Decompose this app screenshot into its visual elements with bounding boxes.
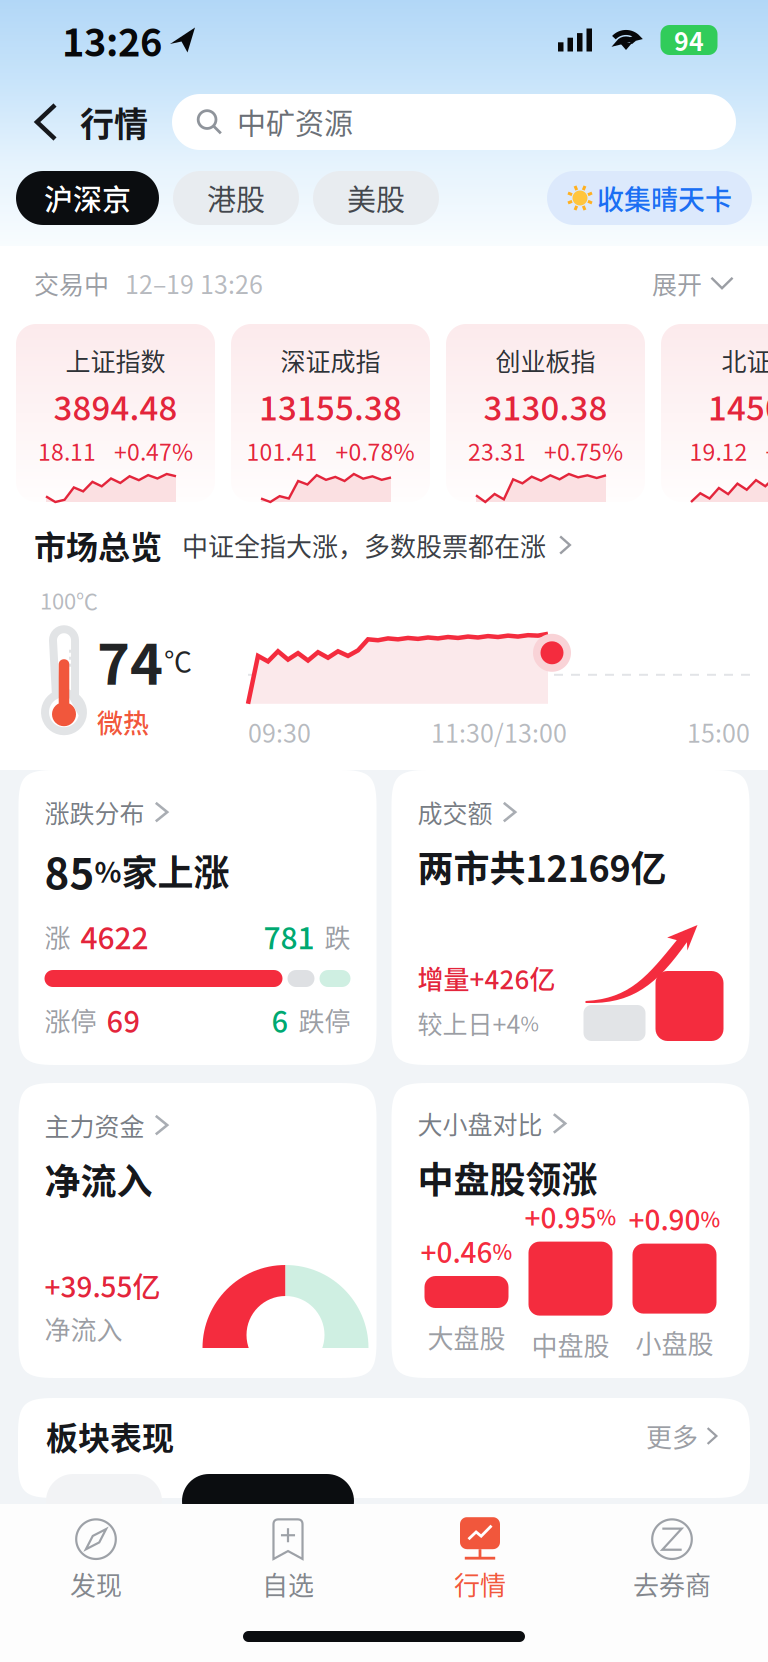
- staticText: 行情: [454, 1565, 506, 1603]
- staticText: 家上涨: [121, 844, 229, 897]
- staticText: 中矿资源: [237, 101, 353, 143]
- button[interactable]: 更多: [646, 1417, 722, 1455]
- staticText: 成交额: [417, 794, 492, 830]
- staticText: 小盘股: [635, 1324, 713, 1361]
- staticText: 中盘股领涨: [417, 1151, 597, 1204]
- staticText: 中盘股: [531, 1326, 609, 1363]
- staticText: +1.2%: [765, 434, 768, 467]
- staticText: 3894.48: [53, 382, 177, 430]
- button[interactable]: 收集晴天卡: [547, 171, 752, 225]
- staticText: 交易中: [34, 265, 109, 301]
- staticText: 市场总览: [34, 522, 162, 568]
- staticText: 13:26: [62, 12, 162, 67]
- staticText: 上证指数: [65, 342, 165, 378]
- button[interactable]: Back: [28, 99, 64, 145]
- button[interactable]: 行情: [384, 1504, 576, 1616]
- button[interactable]: 美股: [313, 171, 439, 225]
- button[interactable]: 中矿资源: [172, 94, 736, 150]
- button[interactable]: 发现: [0, 1504, 192, 1616]
- staticText: 主力资金: [44, 1107, 144, 1143]
- staticText: 自选: [262, 1565, 314, 1603]
- staticText: +0.46: [420, 1230, 492, 1271]
- staticText: 12–19 13:26: [125, 265, 263, 301]
- staticText: 板块表现: [46, 1413, 174, 1459]
- staticText: 行情: [80, 97, 148, 147]
- staticText: 跌停: [298, 1001, 350, 1039]
- staticText: 净流入: [44, 1153, 152, 1205]
- button[interactable]: 北证50: [661, 324, 768, 502]
- staticText: 94: [674, 22, 704, 58]
- staticText: 涨跌分布: [44, 794, 144, 830]
- staticText: 1450.2: [708, 382, 768, 430]
- staticText: 781: [263, 915, 314, 958]
- staticText: 11:30/13:00: [431, 714, 567, 750]
- staticText: +0.78%: [335, 434, 414, 467]
- staticText: 15:00: [687, 714, 750, 750]
- staticText: +0.75%: [544, 434, 623, 467]
- staticText: 创业板指: [495, 342, 595, 378]
- staticText: 18.11: [38, 434, 96, 467]
- staticText: 去券商: [633, 1565, 711, 1603]
- staticText: 北证50: [721, 342, 768, 378]
- staticText: %: [700, 1203, 720, 1233]
- staticText: 3130.38: [483, 382, 607, 430]
- staticText: 74: [97, 620, 163, 701]
- staticText: 101.41: [246, 434, 317, 467]
- staticText: 4622: [80, 915, 148, 958]
- staticText: 收集晴天卡: [597, 178, 732, 218]
- staticText: 大盘股: [427, 1318, 505, 1356]
- button[interactable]: 沪深京: [16, 171, 159, 225]
- staticText: 09:30: [248, 714, 311, 750]
- button[interactable]: 涨跌分布: [18, 770, 376, 1065]
- staticText: %: [520, 1008, 538, 1037]
- button[interactable]: 上证指数: [16, 324, 215, 502]
- staticText: 美股: [347, 177, 405, 219]
- staticText: 85: [44, 840, 94, 901]
- staticText: 6: [271, 999, 288, 1041]
- staticText: 跌: [324, 917, 350, 955]
- staticText: 增量+426亿: [417, 959, 555, 997]
- staticText: 展开: [652, 265, 702, 301]
- staticText: +0.47%: [114, 434, 193, 467]
- staticText: 更多: [646, 1417, 698, 1455]
- staticText: %: [94, 850, 121, 891]
- staticText: +39.55亿: [44, 1265, 160, 1305]
- staticText: 涨: [44, 917, 70, 955]
- staticText: 23.31: [468, 434, 526, 467]
- button[interactable]: 成交额: [391, 770, 749, 1065]
- staticText: 两市共12169亿: [417, 840, 666, 892]
- button[interactable]: 大小盘对比: [391, 1083, 749, 1378]
- staticText: 发现: [70, 1565, 122, 1603]
- staticText: 69: [106, 999, 140, 1041]
- staticText: 涨停: [44, 1001, 96, 1039]
- staticText: 微热: [97, 703, 149, 740]
- staticText: %: [596, 1201, 616, 1231]
- staticText: 沪深京: [44, 177, 131, 219]
- staticText: +0.95: [524, 1196, 596, 1237]
- button[interactable]: 自选: [192, 1504, 384, 1616]
- staticText: ℃: [164, 640, 192, 681]
- staticText: 19.12: [689, 434, 747, 467]
- staticText: 大小盘对比: [417, 1105, 542, 1141]
- staticText: 港股: [207, 177, 265, 219]
- staticText: 较上日+4: [417, 1005, 520, 1041]
- staticText: 深证成指: [280, 342, 380, 378]
- staticText: 中证全指大涨，多数股票都在涨: [182, 526, 546, 564]
- staticText: %: [492, 1235, 512, 1266]
- staticText: 100℃: [40, 584, 98, 616]
- button[interactable]: 去券商: [576, 1504, 768, 1616]
- button[interactable]: 港股: [173, 171, 299, 225]
- staticText: +0.90: [628, 1198, 700, 1239]
- button[interactable]: 展开: [652, 265, 734, 301]
- staticText: 13155.38: [259, 382, 402, 430]
- button[interactable]: 创业板指: [446, 324, 645, 502]
- button[interactable]: 主力资金: [18, 1083, 376, 1378]
- staticText: 净流入: [44, 1309, 122, 1347]
- button[interactable]: 深证成指: [231, 324, 430, 502]
- button[interactable]: 市场总览: [0, 506, 768, 584]
